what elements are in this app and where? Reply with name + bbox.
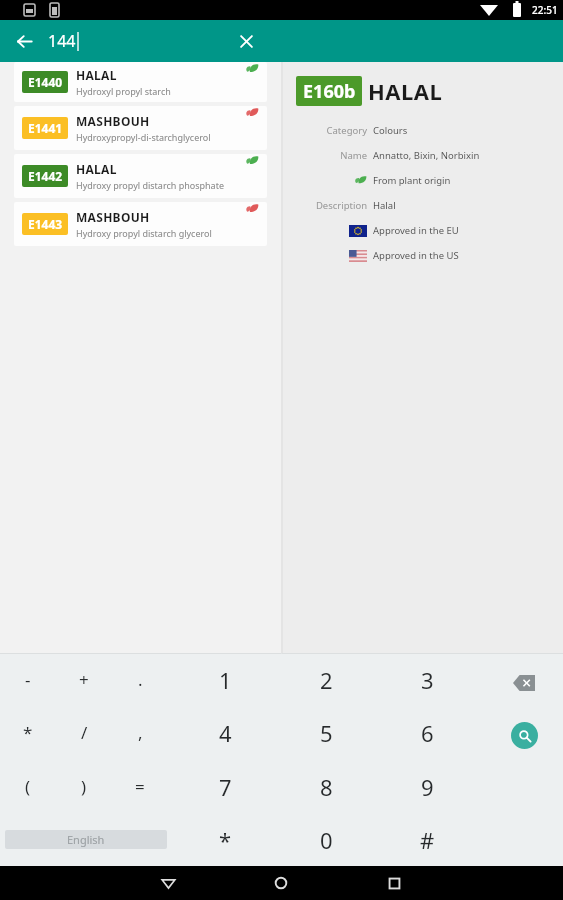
staticText: 1 (219, 665, 232, 695)
button[interactable]: E1443 (14, 202, 267, 246)
button[interactable]: 5 (298, 706, 354, 759)
button[interactable]: / (56, 706, 112, 759)
staticText: ( (25, 775, 31, 798)
staticText: = (135, 775, 145, 798)
button[interactable]: 8 (298, 760, 354, 813)
staticText: Halal (373, 199, 396, 212)
button[interactable]: 7 (197, 760, 253, 813)
staticText: Name (340, 149, 367, 162)
staticText: + (79, 668, 89, 691)
staticText: 144 (48, 30, 76, 52)
button[interactable]: Back (8, 25, 40, 57)
button[interactable]: * (197, 813, 253, 866)
button[interactable]: 3 (399, 653, 455, 706)
button[interactable]: 9 (399, 760, 455, 813)
staticText: Hydroxy propyl distarch phosphate (76, 179, 224, 191)
staticText: Hydroxy propyl distarch glycerol (76, 227, 212, 239)
button[interactable]: - (0, 653, 56, 706)
staticText: Approved in the US (373, 249, 459, 262)
button[interactable]: E1441 (14, 106, 267, 150)
button[interactable]: E1440 (14, 62, 267, 102)
staticText: 9 (421, 772, 434, 802)
staticText: , (138, 721, 143, 744)
staticText: 4 (219, 718, 232, 748)
staticText: * (23, 721, 33, 744)
staticText: 3 (421, 665, 434, 695)
staticText: 5 (320, 718, 333, 748)
staticText: HALAL (76, 67, 117, 83)
staticText: Colours (373, 124, 408, 137)
staticText: From plant origin (373, 174, 451, 187)
button[interactable]: E1442 (14, 154, 267, 198)
button[interactable]: 0 (298, 813, 354, 866)
staticText: MASHBOUH (76, 113, 150, 129)
button[interactable]: * (0, 706, 56, 759)
staticText: 7 (219, 772, 232, 802)
button[interactable]: English (5, 830, 167, 849)
button[interactable]: Recents (368, 866, 420, 900)
staticText: 8 (320, 772, 333, 802)
staticText: Description (315, 199, 367, 212)
button[interactable]: = (112, 760, 168, 813)
staticText: / (81, 721, 88, 744)
staticText: E1443 (28, 216, 63, 232)
staticText: E160b (303, 79, 356, 104)
staticText: . (138, 668, 143, 691)
staticText: Annatto, Bixin, Norbixin (373, 149, 480, 162)
staticText: ) (81, 775, 87, 798)
button[interactable]: # (399, 813, 455, 866)
staticText: 6 (421, 718, 434, 748)
staticText: # (420, 825, 435, 855)
button[interactable]: Back (142, 866, 194, 900)
staticText: English (67, 832, 105, 847)
staticText: * (219, 825, 232, 855)
button[interactable]: . (112, 653, 168, 706)
staticText: HALAL (368, 76, 443, 106)
button[interactable]: 1 (197, 653, 253, 706)
staticText: Hydroxypropyl-di-starchglycerol (76, 131, 211, 143)
staticText: 2 (320, 665, 333, 695)
button[interactable]: ) (56, 760, 112, 813)
button[interactable]: 6 (399, 706, 455, 759)
staticText: E1440 (28, 74, 63, 90)
staticText: E1442 (28, 168, 63, 184)
button[interactable]: 4 (197, 706, 253, 759)
button[interactable]: Search (496, 709, 552, 762)
staticText: MASHBOUH (76, 209, 150, 225)
button[interactable]: Clear search (229, 24, 263, 58)
button[interactable]: Backspace (496, 656, 552, 709)
staticText: 22:51 (532, 3, 558, 17)
staticText: 0 (320, 825, 333, 855)
button[interactable]: ( (0, 760, 56, 813)
staticText: E1441 (28, 120, 63, 136)
staticText: Hydroxyl propyl starch (76, 85, 171, 97)
button[interactable]: Home (255, 866, 307, 900)
staticText: - (25, 668, 31, 691)
button[interactable]: 2 (298, 653, 354, 706)
button[interactable]: , (112, 706, 168, 759)
staticText: HALAL (76, 161, 117, 177)
button[interactable]: + (56, 653, 112, 706)
staticText: Approved in the EU (373, 224, 459, 237)
staticText: Category (326, 124, 367, 137)
